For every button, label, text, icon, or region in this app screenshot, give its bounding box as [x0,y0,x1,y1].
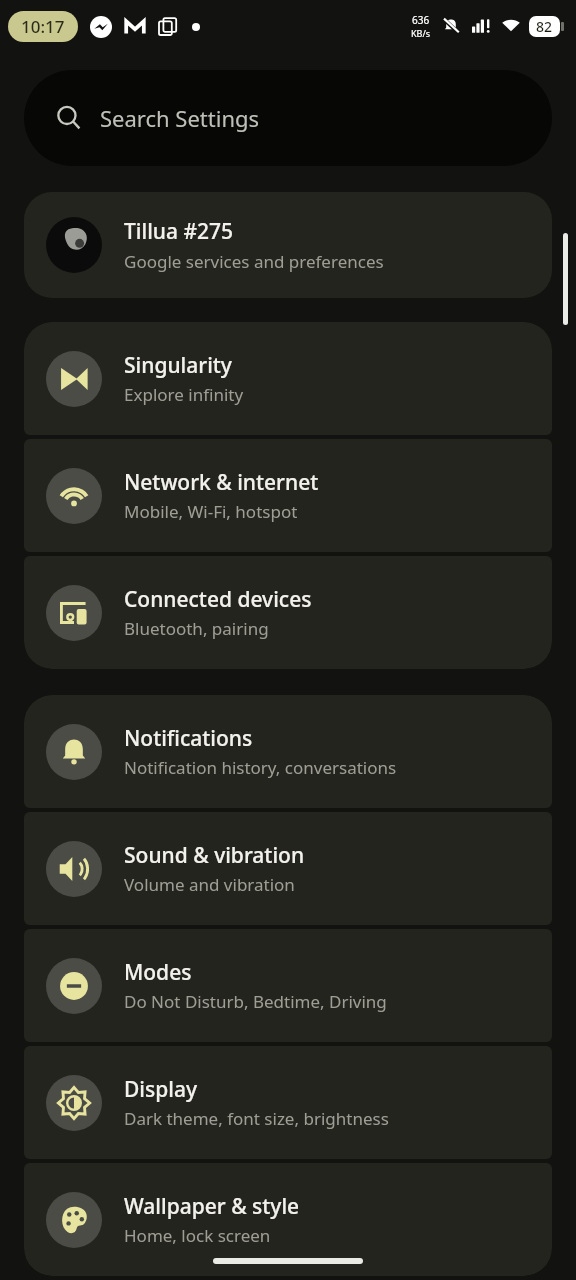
staticText: Wallpaper & style [124,1192,300,1221]
button[interactable]: Tillua #275 [24,192,552,298]
button[interactable]: Wallpaper & style [24,1163,552,1276]
button[interactable]: Search [24,70,552,166]
button[interactable]: Singularity [24,322,552,435]
staticText: Notifications [124,724,253,753]
staticText: Singularity [124,351,232,380]
staticText: Network & internet [124,468,319,497]
button[interactable]: Notifications [24,695,552,808]
staticText: Tillua #275 [124,217,234,246]
staticText: Google services and preferences [124,250,384,273]
other: Search [56,105,82,131]
staticText: Dark theme, font size, brightness [124,1107,389,1130]
staticText: Display [124,1075,198,1104]
staticText: Connected devices [124,585,312,614]
staticText: Mobile, Wi-Fi, hotspot [124,500,298,523]
staticText: 10:17 [21,15,65,38]
staticText: Sound & vibration [124,841,305,870]
button[interactable]: Display [24,1046,552,1159]
button[interactable]: Sound & vibration [24,812,552,925]
staticText: Volume and vibration [124,873,295,896]
button[interactable]: Network & internet [24,439,552,552]
button[interactable]: Connected devices [24,556,552,669]
staticText: 82 [536,17,553,36]
staticText: Search Settings [100,103,260,133]
staticText: Home, lock screen [124,1224,271,1247]
staticText: 636 [412,13,430,27]
staticText: Do Not Disturb, Bedtime, Driving [124,990,387,1013]
staticText: Notification history, conversations [124,756,397,779]
staticText: Explore infinity [124,383,244,406]
staticText: KB/s [411,27,431,39]
staticText: Bluetooth, pairing [124,617,269,640]
staticText: Modes [124,958,192,987]
button[interactable]: Modes [24,929,552,1042]
